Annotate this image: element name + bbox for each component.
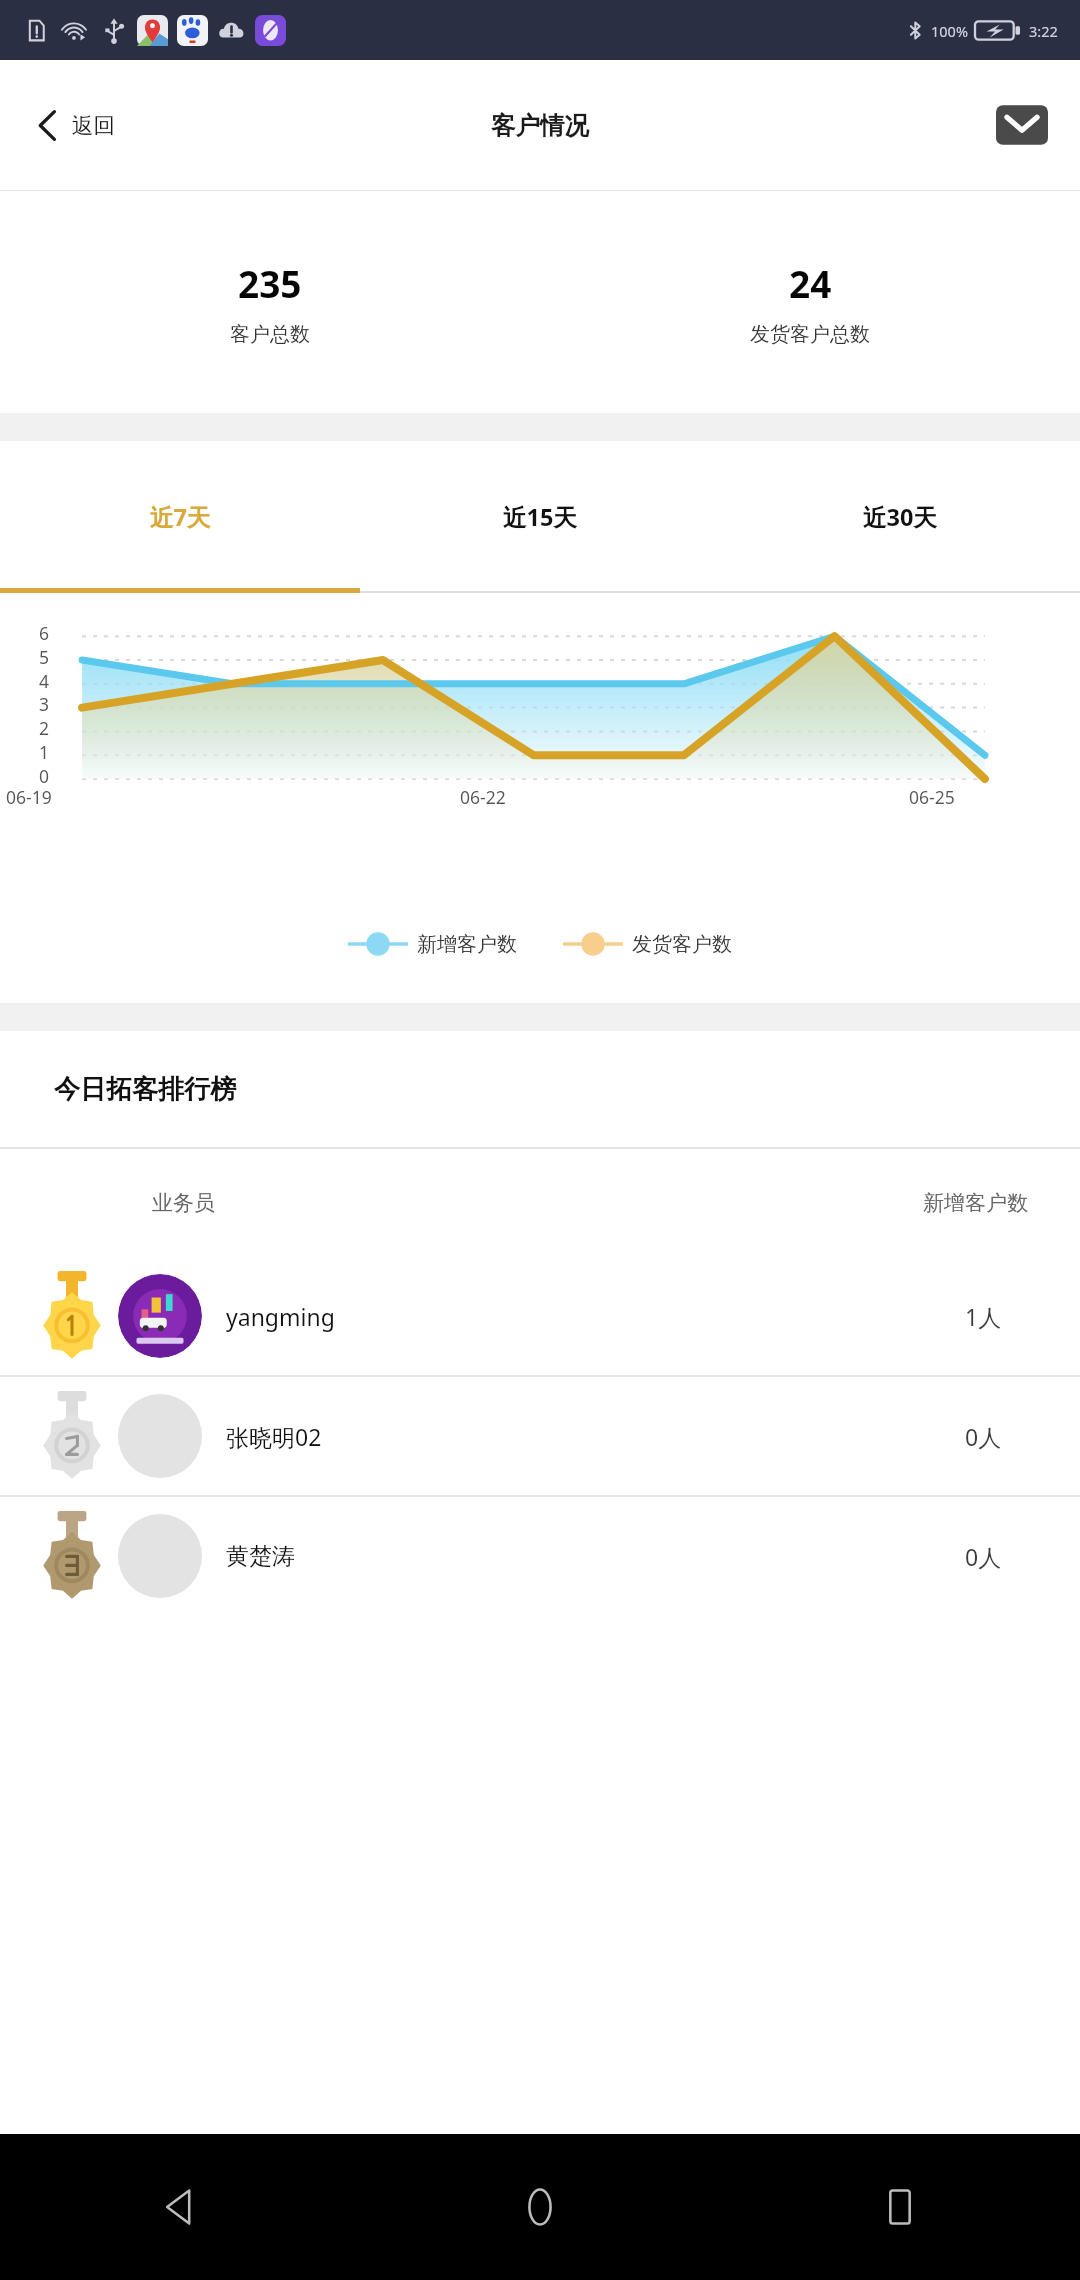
staticText: 业务员 bbox=[152, 1190, 215, 1216]
button[interactable]: Messages bbox=[990, 93, 1054, 157]
staticText: 客户情况 bbox=[491, 110, 589, 141]
button[interactable]: 张晓明02 bbox=[0, 1377, 1080, 1495]
staticText: 100% bbox=[931, 21, 968, 41]
staticText: 近15天 bbox=[503, 501, 577, 533]
staticText: 3:22 bbox=[1029, 21, 1058, 41]
staticText: 235 bbox=[238, 258, 302, 308]
button[interactable]: Recents bbox=[720, 2134, 1080, 2280]
staticText: 客户总数 bbox=[230, 322, 310, 347]
button[interactable]: 返回 bbox=[0, 60, 141, 190]
staticText: 2 bbox=[39, 716, 50, 740]
staticText: 张晓明02 bbox=[226, 1421, 322, 1452]
button[interactable]: 发货客户数 bbox=[563, 930, 732, 958]
staticText: 5 bbox=[39, 645, 50, 669]
staticText: 今日拓客排行榜 bbox=[54, 1073, 236, 1106]
staticText: 06-25 bbox=[909, 785, 955, 809]
staticText: 3 bbox=[39, 692, 50, 716]
button[interactable]: 近7天 bbox=[0, 441, 360, 593]
staticText: 06-19 bbox=[6, 785, 52, 809]
staticText: 24 bbox=[789, 258, 832, 308]
staticText: 6 bbox=[39, 621, 50, 645]
staticText: 近7天 bbox=[150, 501, 211, 533]
staticText: 0 bbox=[39, 764, 50, 788]
button[interactable]: 24 bbox=[540, 191, 1080, 413]
staticText: 1人 bbox=[965, 1301, 1002, 1332]
staticText: 发货客户总数 bbox=[750, 322, 870, 347]
staticText: 1 bbox=[39, 740, 50, 764]
button[interactable]: 近15天 bbox=[360, 441, 720, 593]
staticText: 新增客户数 bbox=[417, 932, 517, 957]
staticText: 0人 bbox=[965, 1541, 1002, 1572]
button[interactable]: 黄楚涛 bbox=[0, 1497, 1080, 1615]
button[interactable]: yangming bbox=[0, 1257, 1080, 1375]
button[interactable]: 235 bbox=[0, 191, 540, 413]
button[interactable]: 新增客户数 bbox=[348, 930, 517, 958]
button[interactable]: Home bbox=[360, 2134, 720, 2280]
staticText: 4 bbox=[39, 669, 50, 693]
staticText: 新增客户数 bbox=[923, 1190, 1028, 1216]
staticText: 发货客户数 bbox=[632, 932, 732, 957]
staticText: 0人 bbox=[965, 1421, 1002, 1452]
staticText: 返回 bbox=[72, 112, 115, 139]
staticText: 近30天 bbox=[863, 501, 937, 533]
button[interactable]: Back bbox=[0, 2134, 360, 2280]
staticText: yangming bbox=[226, 1301, 335, 1332]
staticText: 06-22 bbox=[460, 785, 506, 809]
button[interactable]: 近30天 bbox=[720, 441, 1080, 593]
staticText: 黄楚涛 bbox=[226, 1542, 295, 1571]
